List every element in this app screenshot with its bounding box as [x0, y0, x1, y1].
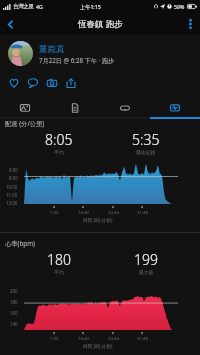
staticText: 最佳紀錄 — [136, 149, 156, 155]
button[interactable]: Back — [0, 14, 20, 34]
staticText: 8:05 — [45, 130, 73, 149]
staticText: 心率(bpm) — [5, 239, 36, 248]
staticText: 180 — [47, 250, 71, 269]
button[interactable]: Charts — [150, 98, 200, 117]
staticText: 16:40 — [78, 209, 89, 215]
button[interactable]: Like — [7, 76, 20, 89]
staticText: 31:48 — [137, 209, 148, 215]
button[interactable]: Laps — [100, 98, 150, 117]
staticText: 平均 — [54, 149, 64, 155]
staticText: 13:00 — [6, 200, 18, 206]
staticText: 23:44 — [108, 209, 119, 215]
button[interactable]: Profile photo — [8, 41, 33, 66]
staticText: 最大值 — [139, 269, 154, 275]
staticText: 180 — [10, 299, 18, 305]
staticText: 7:35 — [50, 335, 59, 341]
staticText: 23:44 — [108, 335, 119, 341]
staticText: 140 — [10, 321, 18, 327]
staticText: 上午1:15 — [80, 3, 101, 10]
staticText: 10:00 — [6, 184, 18, 190]
button[interactable]: Share — [64, 76, 77, 89]
button[interactable]: Comment — [26, 76, 39, 89]
staticText: 恆春鎮 跑步 — [78, 18, 123, 30]
staticText: 平均 — [54, 269, 64, 275]
staticText: 160 — [10, 310, 18, 316]
staticText: 配速 (分/公里) — [5, 119, 45, 128]
staticText: 4G — [36, 3, 43, 10]
staticText: 董菀真 — [39, 44, 65, 55]
staticText: 11:00 — [6, 192, 18, 198]
staticText: 時間 (時:分秒) — [83, 217, 113, 224]
staticText: 59% — [174, 3, 185, 10]
button[interactable]: Photos — [0, 98, 50, 117]
staticText: 6:00 — [9, 167, 18, 173]
staticText: 7:35 — [50, 209, 59, 215]
staticText: 16:40 — [78, 335, 89, 341]
staticText: 台灣之星 — [13, 3, 34, 10]
staticText: 199 — [134, 250, 158, 269]
staticText: 時間 (時:分秒) — [83, 343, 113, 350]
staticText: 5:35 — [132, 130, 160, 149]
staticText: 200 — [10, 288, 18, 294]
button[interactable]: Details — [50, 98, 100, 117]
staticText: 7月22日 @ 6:28 下午 · 跑步 — [39, 56, 115, 64]
staticText: 8:00 — [9, 175, 18, 181]
button[interactable]: Photos — [45, 76, 58, 89]
staticText: 31:48 — [137, 335, 148, 341]
button[interactable]: More options — [180, 14, 200, 34]
